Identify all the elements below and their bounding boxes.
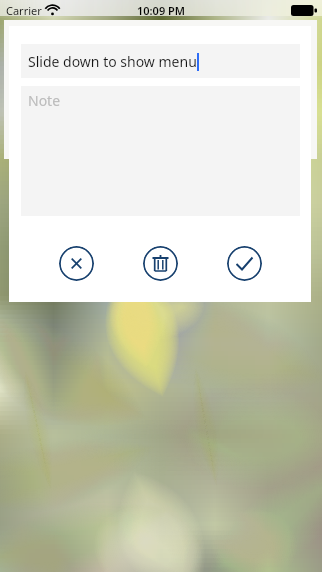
staticText: Note: [28, 91, 61, 110]
button[interactable]: Delete: [143, 246, 178, 281]
button[interactable]: Slide down to show menu: [21, 44, 300, 78]
staticText: Carrier: [6, 3, 42, 18]
button[interactable]: Save: [227, 246, 262, 281]
staticText: Slide down to show menu: [28, 52, 197, 71]
button[interactable]: Cancel: [59, 246, 94, 281]
staticText: 10:09 PM: [137, 3, 186, 18]
